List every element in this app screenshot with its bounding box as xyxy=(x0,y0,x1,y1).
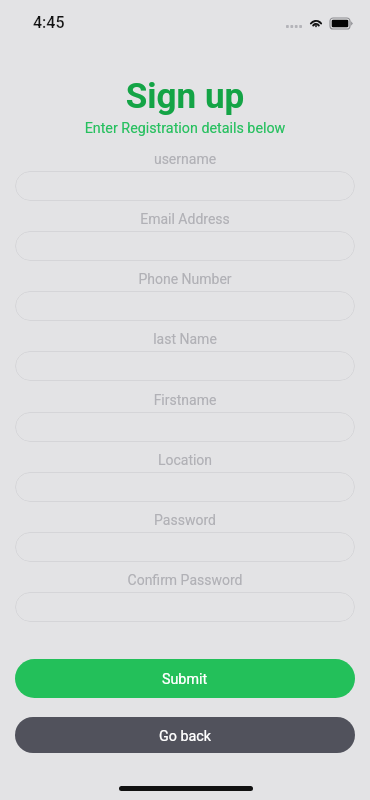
staticText: Go back xyxy=(159,728,211,745)
other: Battery full xyxy=(330,18,354,29)
staticText: Submit xyxy=(162,671,208,688)
staticText: Confirm Password xyxy=(0,572,370,588)
button[interactable]: Confirm Password xyxy=(15,592,355,622)
staticText: Phone Number xyxy=(0,271,370,287)
staticText: Sign up xyxy=(0,76,370,117)
button[interactable]: Go back xyxy=(15,717,355,753)
staticText: Location xyxy=(0,452,370,468)
button[interactable]: Submit xyxy=(15,659,355,698)
staticText: Password xyxy=(0,512,370,528)
staticText: Email Address xyxy=(0,211,370,227)
staticText: Enter Registration details below xyxy=(0,120,370,137)
button[interactable]: Phone Number xyxy=(15,291,355,321)
button[interactable]: last Name xyxy=(15,351,355,381)
button[interactable]: username xyxy=(15,171,355,201)
staticText: last Name xyxy=(0,331,370,347)
other: Wi-Fi xyxy=(308,16,324,28)
staticText: Firstname xyxy=(0,392,370,408)
button[interactable]: Password xyxy=(15,532,355,562)
staticText: username xyxy=(0,151,370,167)
button[interactable]: Email Address xyxy=(15,231,355,261)
staticText: 4:45 xyxy=(33,13,65,32)
button[interactable]: Location xyxy=(15,472,355,502)
button[interactable]: Firstname xyxy=(15,412,355,442)
other: Cellular signal xyxy=(286,25,302,28)
